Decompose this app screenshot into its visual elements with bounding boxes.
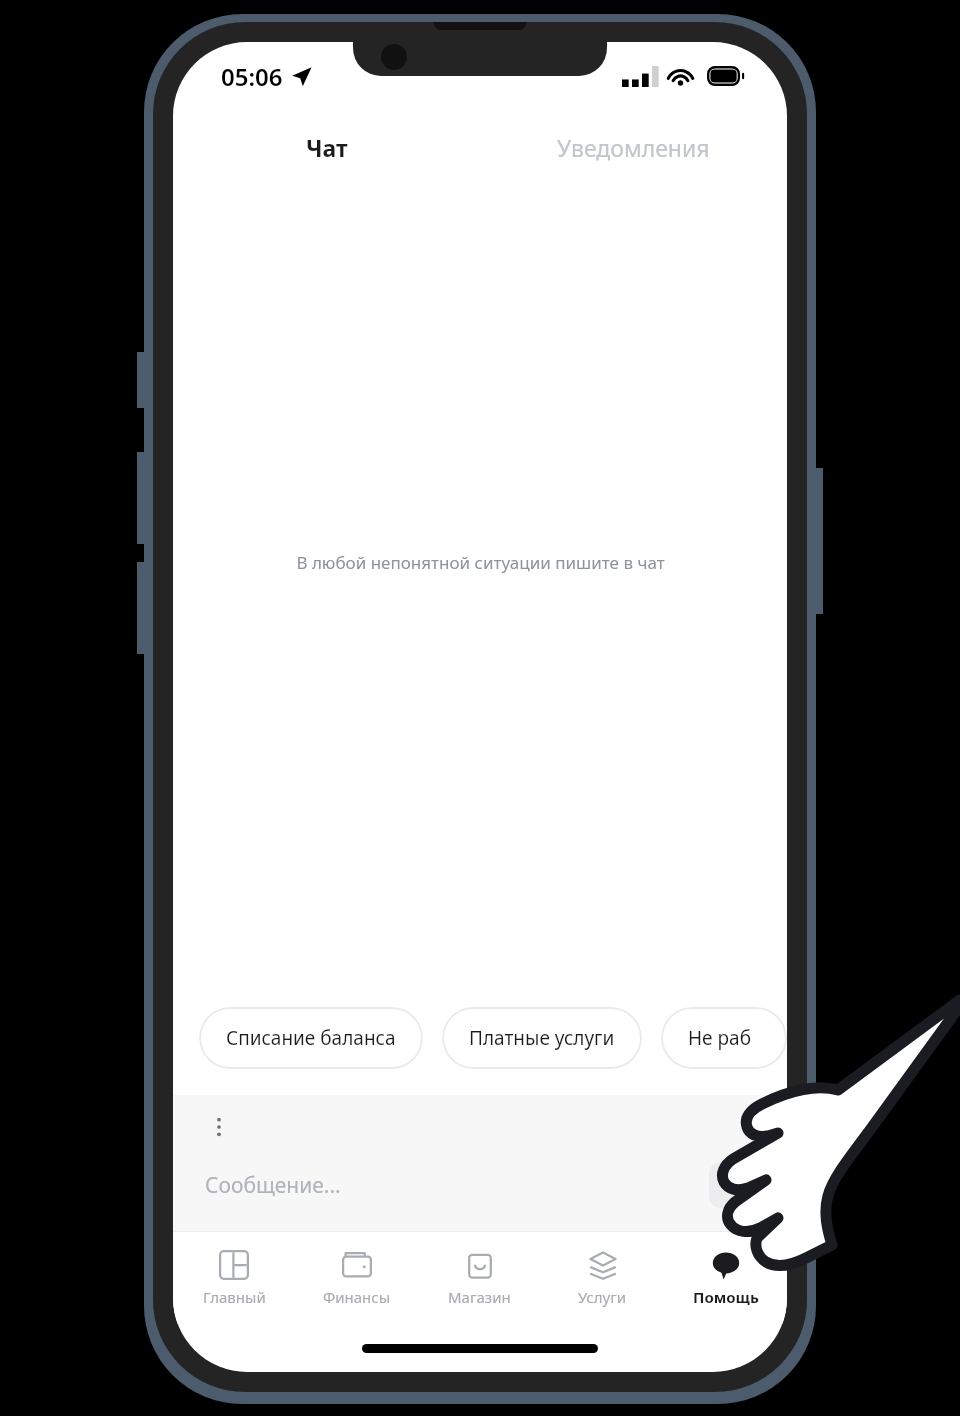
button[interactable]: Финансы bbox=[295, 1232, 418, 1324]
staticText: Финансы bbox=[323, 1287, 391, 1307]
staticText: Помощь bbox=[693, 1287, 759, 1307]
button[interactable]: Помощь bbox=[664, 1232, 787, 1324]
staticText: Услуги bbox=[578, 1287, 627, 1307]
staticText: Не работает интернет bbox=[688, 1025, 760, 1051]
button[interactable]: More options bbox=[205, 1113, 233, 1141]
staticText: Уведомления bbox=[557, 132, 710, 163]
staticText: Чат bbox=[306, 132, 348, 163]
button[interactable]: Списание баланса bbox=[199, 1007, 423, 1069]
staticText: Главный bbox=[203, 1287, 266, 1307]
button[interactable]: Чат bbox=[173, 120, 480, 174]
staticText: Списание баланса bbox=[226, 1025, 396, 1051]
button[interactable]: Платные услуги bbox=[442, 1007, 642, 1069]
button[interactable]: Не работает интернет bbox=[661, 1007, 787, 1069]
staticText: В любой непонятной ситуации пишите в чат bbox=[296, 551, 665, 574]
staticText: 05:06 bbox=[221, 60, 283, 93]
button[interactable]: Услуги bbox=[541, 1232, 664, 1324]
button[interactable]: Уведомления bbox=[480, 120, 787, 174]
staticText: Платные услуги bbox=[469, 1025, 615, 1051]
staticText: Сообщение... bbox=[205, 1171, 341, 1200]
button[interactable]: Send bbox=[709, 1162, 755, 1208]
button[interactable]: Магазин bbox=[418, 1232, 541, 1324]
staticText: Магазин bbox=[448, 1287, 511, 1307]
button[interactable]: Главный bbox=[173, 1232, 295, 1324]
